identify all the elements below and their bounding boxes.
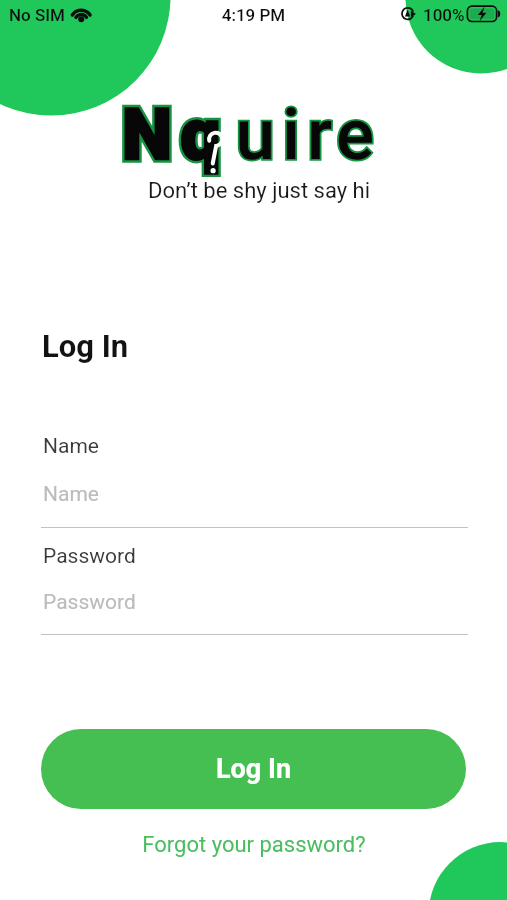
button[interactable]: Log In [41,729,466,809]
staticText: 100% [423,5,465,25]
staticText: Don’t be shy just say hi [148,178,371,204]
button[interactable]: Password [43,590,464,636]
staticText: Log In [42,328,129,364]
staticText: Name [43,482,99,507]
staticText: Name [43,434,99,459]
staticText: Password [43,544,136,569]
button[interactable]: Name [43,482,464,528]
staticText: 4:19 PM [0,5,507,25]
other: Status icons [0,0,507,30]
staticText: Password [43,590,136,615]
staticText: No SIM [9,5,65,25]
staticText: Forgot your password? [142,832,366,858]
staticText: Log In [216,753,292,785]
button[interactable]: Forgot your password? [0,832,507,858]
